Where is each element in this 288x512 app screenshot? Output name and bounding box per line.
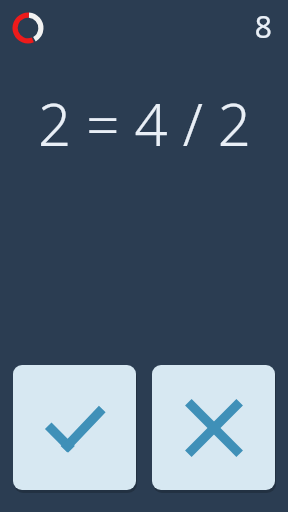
staticText: 8 [254,6,272,47]
staticText: 2 = 4 / 2 [38,84,251,163]
button[interactable]: Time remaining [11,11,45,45]
button[interactable]: Wrong [152,365,275,490]
button[interactable]: 8 [254,6,272,47]
button[interactable]: Correct [13,365,136,490]
